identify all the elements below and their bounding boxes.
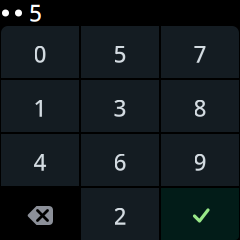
button[interactable]: 5 xyxy=(81,26,159,78)
button[interactable]: Delete xyxy=(1,188,79,240)
staticText: 5 xyxy=(29,0,42,28)
staticText: 9 xyxy=(193,147,206,177)
staticText: 7 xyxy=(193,39,206,69)
staticText: 5 xyxy=(113,39,126,69)
staticText: 8 xyxy=(193,93,206,123)
button[interactable]: 7 xyxy=(161,26,239,78)
staticText: 3 xyxy=(113,93,126,123)
staticText: 1 xyxy=(33,93,46,123)
button[interactable]: 4 xyxy=(1,134,79,186)
staticText: 0 xyxy=(33,39,46,69)
staticText: 2 xyxy=(113,201,126,231)
button[interactable]: 3 xyxy=(81,80,159,132)
button[interactable]: 1 xyxy=(1,80,79,132)
button[interactable]: 9 xyxy=(161,134,239,186)
button[interactable]: 0 xyxy=(1,26,79,78)
button[interactable]: 8 xyxy=(161,80,239,132)
button[interactable]: 2 xyxy=(81,188,159,240)
button[interactable]: 6 xyxy=(81,134,159,186)
staticText: 4 xyxy=(33,147,46,177)
staticText: 6 xyxy=(113,147,126,177)
button[interactable]: Confirm xyxy=(161,188,239,240)
